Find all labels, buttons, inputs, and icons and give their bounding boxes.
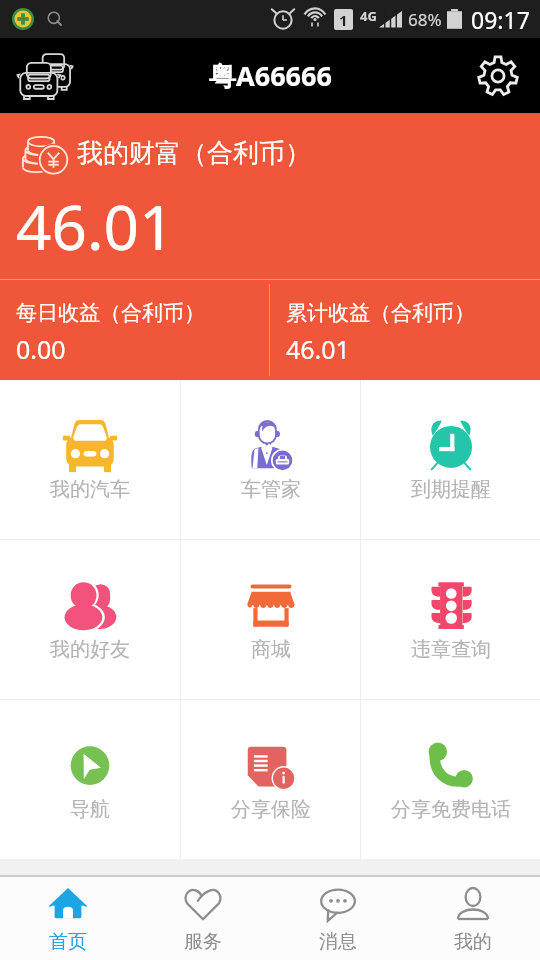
staticText: 消息	[319, 930, 357, 954]
staticText: 商城	[251, 637, 291, 662]
staticText: 68%	[408, 8, 442, 31]
staticText: 车管家	[241, 477, 301, 502]
button[interactable]: 服务	[135, 877, 270, 960]
staticText: 我的好友	[50, 637, 130, 662]
staticText: 服务	[184, 930, 222, 954]
staticText: 46.01	[286, 332, 350, 366]
staticText: 分享免费电话	[391, 797, 511, 822]
button[interactable]: My vehicles	[13, 44, 77, 108]
button[interactable]: 车管家	[181, 380, 360, 539]
staticText: 分享保险	[231, 797, 311, 822]
button[interactable]: 导航	[0, 700, 180, 859]
button[interactable]: 分享保险	[181, 700, 360, 859]
staticText: 09:17	[471, 4, 530, 35]
staticText: 我的汽车	[50, 477, 130, 502]
button[interactable]: 商城	[181, 540, 360, 699]
staticText: 0.00	[16, 332, 66, 366]
staticText: 导航	[70, 797, 110, 822]
staticText: 4G	[360, 7, 377, 25]
staticText: 1	[339, 10, 348, 30]
staticText: 46.01	[16, 184, 175, 268]
button[interactable]: 我的汽车	[0, 380, 180, 539]
button[interactable]: 到期提醒	[361, 380, 540, 539]
staticText: 粤A66666	[209, 57, 332, 94]
staticText: 我的	[454, 930, 492, 954]
staticText: 到期提醒	[411, 477, 491, 502]
staticText: 累计收益（合利币）	[286, 300, 475, 326]
button[interactable]: 违章查询	[361, 540, 540, 699]
button[interactable]: 我的好友	[0, 540, 180, 699]
staticText: 每日收益（合利币）	[16, 300, 205, 326]
staticText: 首页	[49, 930, 87, 954]
button[interactable]: Settings	[470, 48, 526, 104]
button[interactable]: 首页	[0, 877, 135, 960]
staticText: 我的财富（合利币）	[77, 137, 311, 170]
button[interactable]: 我的	[405, 877, 540, 960]
staticText: 违章查询	[411, 637, 491, 662]
button[interactable]: 消息	[270, 877, 405, 960]
button[interactable]: 分享免费电话	[361, 700, 540, 859]
